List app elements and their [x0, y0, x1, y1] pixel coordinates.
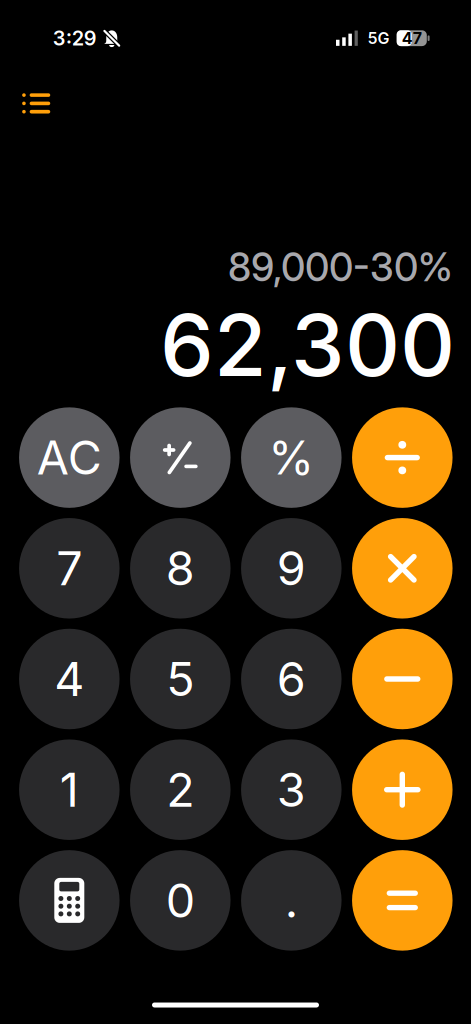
button[interactable]: 7: [19, 518, 119, 618]
button[interactable]: 1: [19, 739, 119, 840]
button[interactable]: 2: [130, 739, 231, 840]
button[interactable]: 3: [241, 739, 342, 840]
staticText: .: [285, 872, 298, 929]
staticText: 5G: [367, 28, 389, 48]
staticText: 5: [166, 651, 194, 707]
staticText: 62,300: [160, 293, 455, 397]
staticText: AC: [37, 429, 102, 486]
staticText: 0: [166, 872, 195, 929]
staticText: 47: [402, 28, 422, 48]
button[interactable]: Add: [352, 739, 453, 840]
staticText: 1: [60, 761, 79, 818]
staticText: 8: [166, 540, 195, 597]
staticText: 7: [56, 540, 82, 597]
button[interactable]: 9: [241, 518, 342, 618]
button[interactable]: Percent: [241, 407, 342, 508]
button[interactable]: 5: [130, 629, 231, 729]
staticText: 89,000-30%: [228, 244, 453, 291]
button[interactable]: 0: [130, 850, 231, 951]
staticText: %: [268, 429, 314, 486]
button[interactable]: All clear: [19, 407, 119, 508]
button[interactable]: Subtract: [352, 629, 453, 729]
staticText: 9: [277, 540, 306, 597]
button[interactable]: 6: [241, 629, 342, 729]
staticText: 2: [166, 761, 194, 818]
button[interactable]: Decimal point: [241, 850, 342, 951]
button[interactable]: Equals: [352, 850, 453, 951]
button[interactable]: 4: [19, 629, 119, 729]
button[interactable]: Multiply: [352, 518, 453, 618]
staticText: 3: [277, 761, 306, 818]
staticText: 4: [54, 651, 84, 707]
staticText: 3:29: [53, 26, 97, 50]
staticText: 6: [277, 651, 306, 707]
button[interactable]: Divide: [352, 407, 453, 508]
button[interactable]: Calculator modes: [19, 850, 119, 951]
button[interactable]: Plus minus: [130, 407, 231, 508]
button[interactable]: 8: [130, 518, 231, 618]
button[interactable]: History: [9, 79, 63, 127]
